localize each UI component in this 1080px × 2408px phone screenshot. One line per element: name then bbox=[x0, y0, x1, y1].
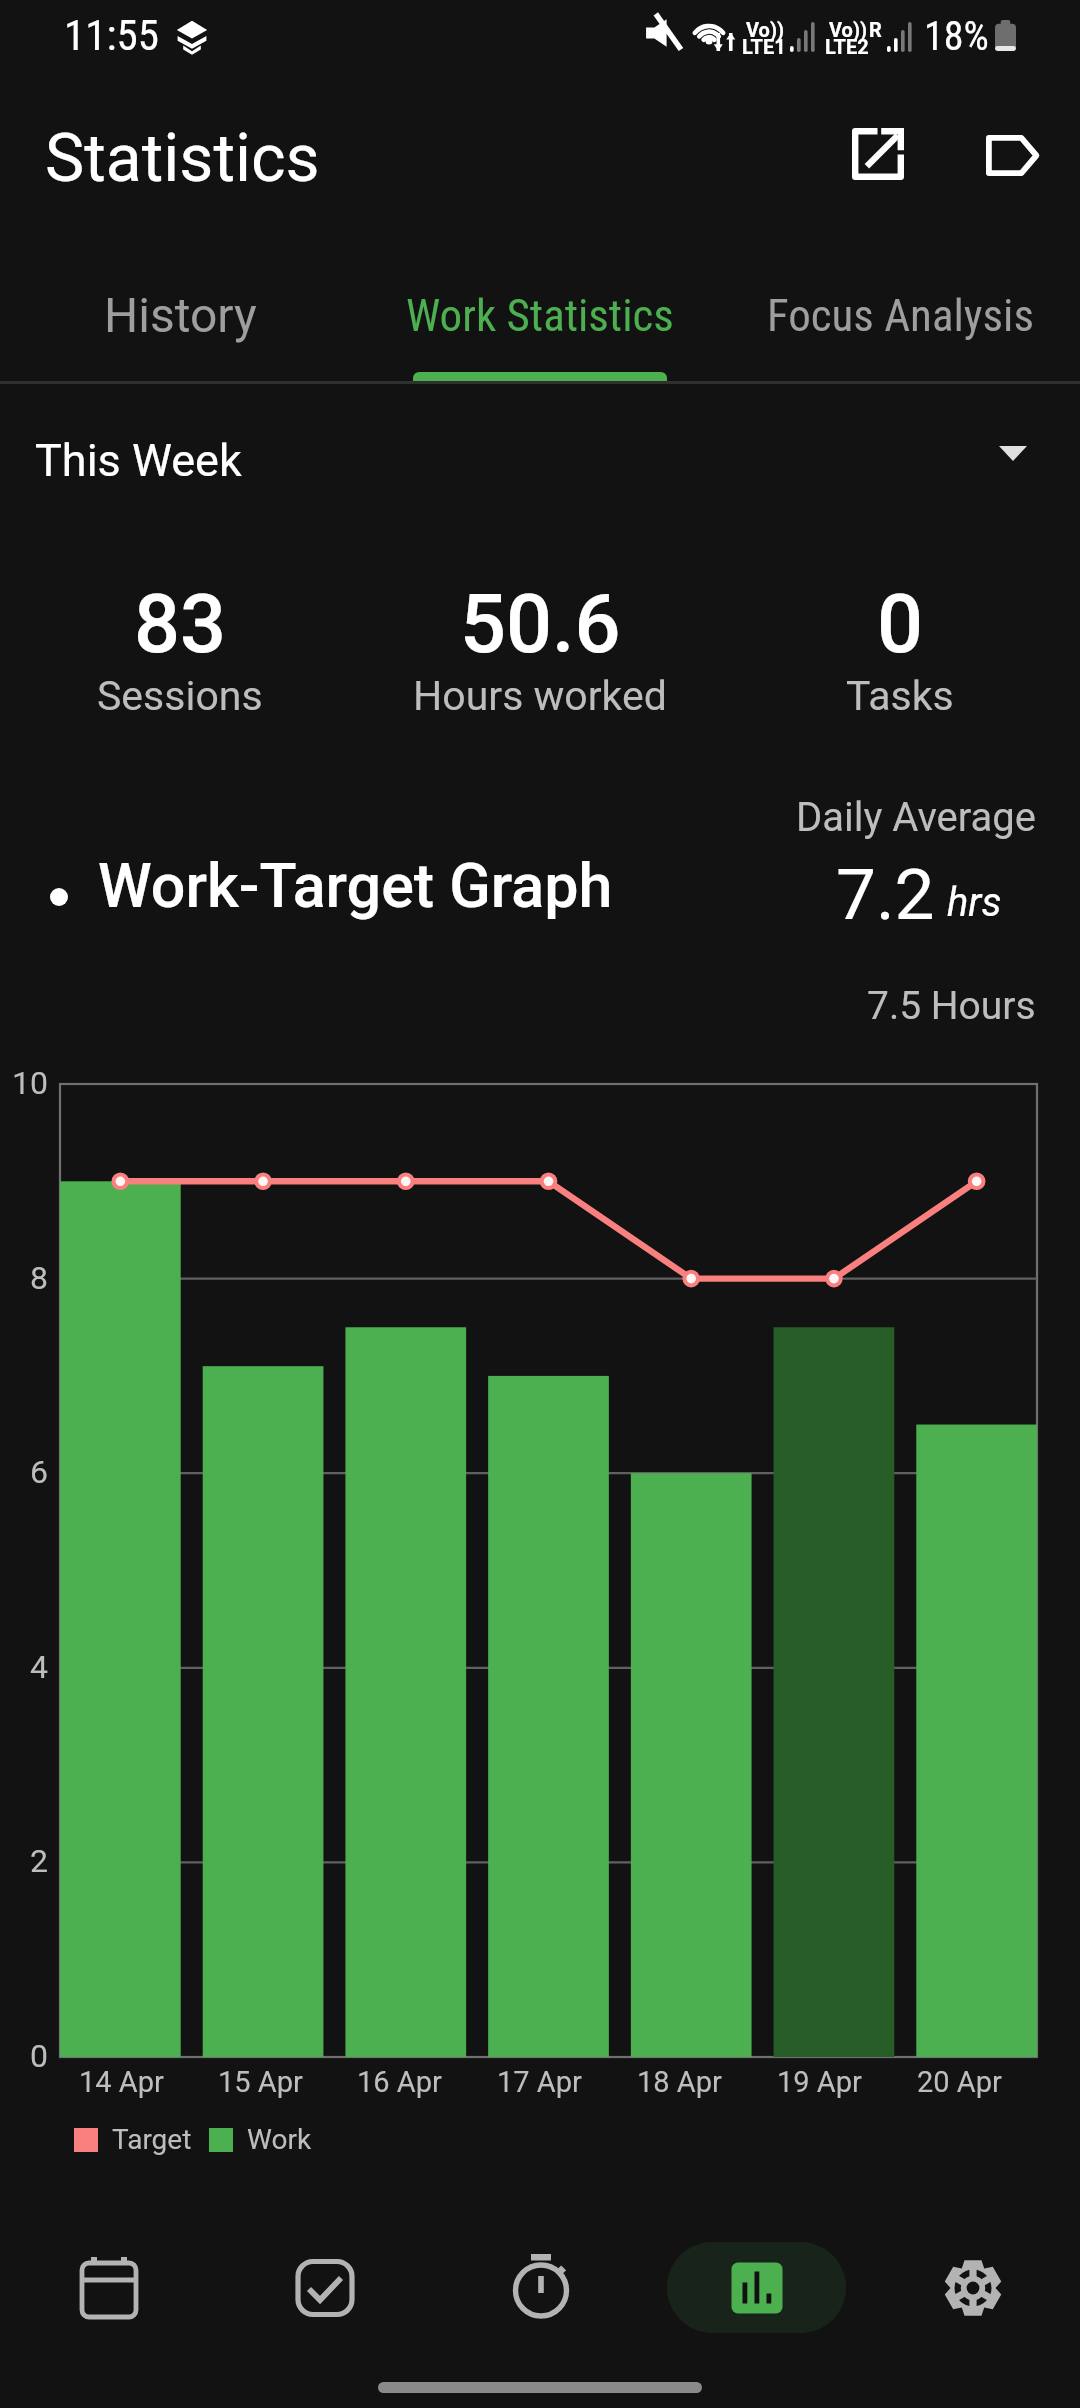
staticText: 7.2 bbox=[836, 853, 935, 936]
button[interactable]: Settings bbox=[864, 2212, 1080, 2362]
staticText: Vo)) bbox=[746, 18, 784, 41]
button[interactable]: Label bbox=[958, 100, 1068, 210]
button[interactable]: Statistics bbox=[648, 2212, 864, 2362]
staticText: Tasks bbox=[846, 672, 954, 720]
staticText: Focus Analysis bbox=[767, 289, 1034, 342]
staticText: hrs bbox=[947, 879, 1002, 926]
staticText: 18% bbox=[924, 13, 989, 60]
staticText: 4 bbox=[0, 1648, 48, 1686]
staticText: Statistics bbox=[45, 120, 320, 197]
staticText: R bbox=[869, 18, 882, 41]
staticText: 20 Apr bbox=[917, 2065, 1002, 2099]
staticText: LTE1 bbox=[742, 35, 786, 58]
staticText: LTE2 bbox=[825, 35, 869, 58]
staticText: Sessions bbox=[97, 672, 263, 720]
button[interactable]: This Week bbox=[0, 416, 1080, 504]
staticText: 83 bbox=[134, 577, 227, 672]
staticText: 8 bbox=[0, 1259, 48, 1297]
staticText: 7.5 Hours bbox=[867, 983, 1036, 1029]
staticText: 50.6 bbox=[460, 577, 621, 672]
staticText: Work bbox=[247, 2123, 312, 2156]
staticText: 11:55 bbox=[64, 10, 159, 60]
button[interactable]: History bbox=[0, 244, 360, 384]
staticText: Work Statistics bbox=[406, 289, 674, 342]
staticText: 2 bbox=[0, 1842, 48, 1880]
button[interactable]: Open in new window bbox=[822, 99, 932, 209]
staticText: Vo)) bbox=[829, 18, 867, 41]
button[interactable]: Calendar bbox=[0, 2212, 216, 2362]
staticText: 15 Apr bbox=[218, 2065, 303, 2099]
staticText: History bbox=[104, 287, 257, 343]
button[interactable]: Timer bbox=[432, 2212, 648, 2362]
button[interactable]: Focus Analysis bbox=[720, 244, 1080, 384]
staticText: 18 Apr bbox=[637, 2065, 722, 2099]
staticText: 19 Apr bbox=[777, 2065, 862, 2099]
staticText: Hours worked bbox=[413, 672, 667, 720]
staticText: 6 bbox=[0, 1453, 48, 1491]
staticText: 16 Apr bbox=[357, 2065, 442, 2099]
staticText: Daily Average bbox=[796, 794, 1036, 841]
staticText: 0 bbox=[0, 2037, 48, 2075]
staticText: Target bbox=[112, 2123, 192, 2156]
staticText: 10 bbox=[0, 1064, 48, 1102]
staticText: This Week bbox=[35, 434, 242, 487]
staticText: 0 bbox=[877, 577, 924, 672]
button[interactable]: Tasks bbox=[216, 2212, 432, 2362]
button[interactable]: Work Statistics bbox=[360, 244, 720, 384]
staticText: 14 Apr bbox=[79, 2065, 164, 2099]
staticText: 17 Apr bbox=[497, 2065, 582, 2099]
staticText: Work-Target Graph bbox=[98, 850, 613, 921]
